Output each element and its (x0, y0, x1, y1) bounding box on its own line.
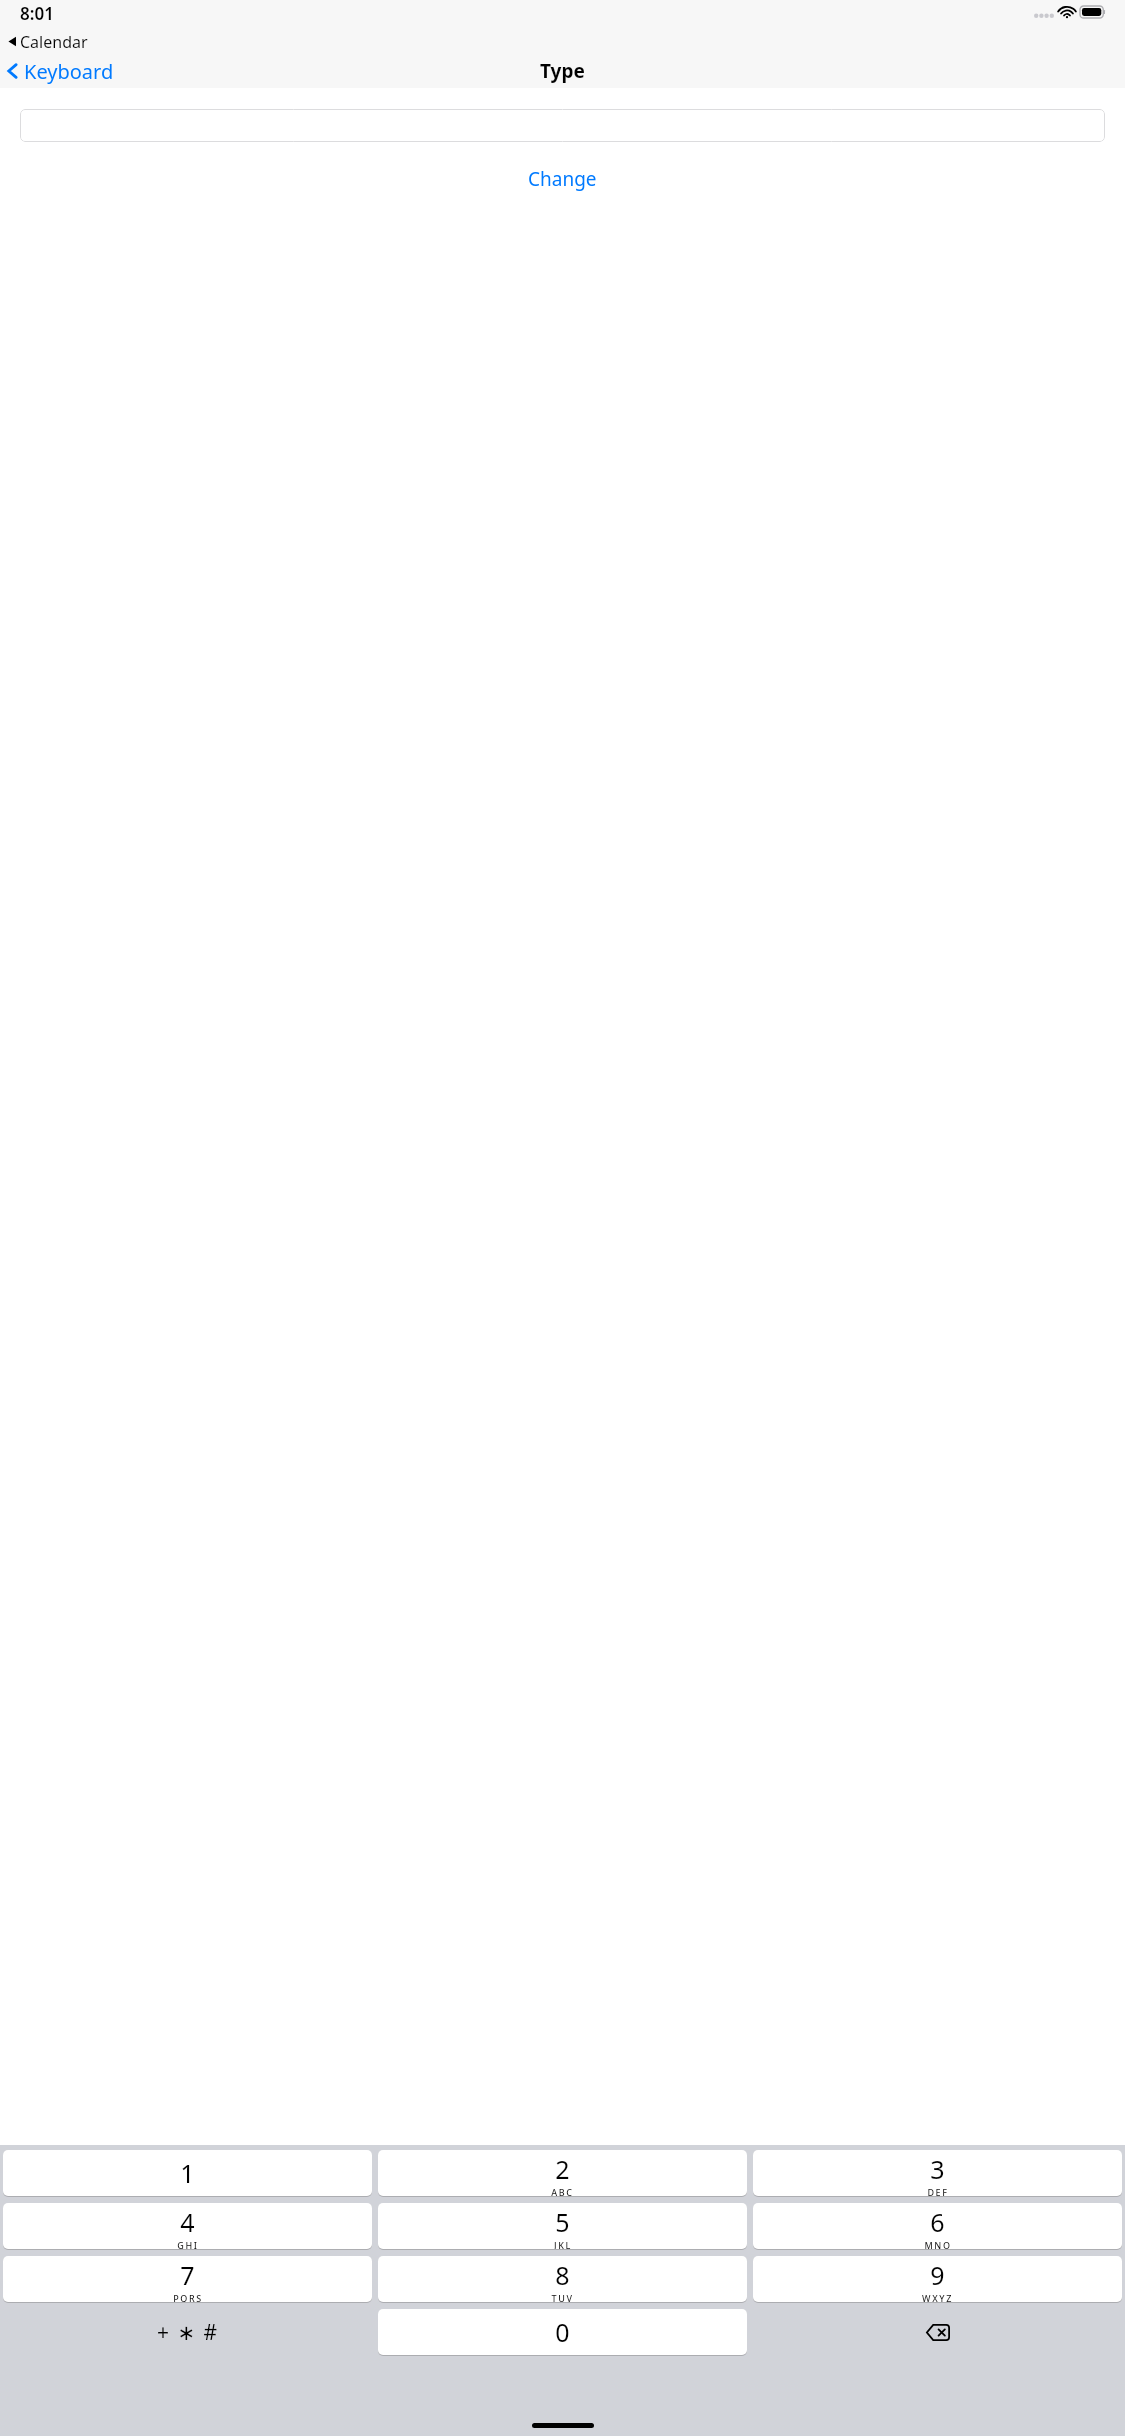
button[interactable]: 2 (378, 2150, 747, 2196)
button[interactable]: 7 (3, 2256, 372, 2302)
staticText: 0 (555, 2315, 570, 2349)
staticText: + ∗ # (157, 2318, 219, 2347)
staticText: GHI (177, 2239, 199, 2249)
button[interactable] (20, 109, 1105, 142)
staticText: Keyboard (24, 58, 114, 85)
button[interactable]: 9 (753, 2256, 1122, 2302)
staticText: PQRS (173, 2292, 203, 2302)
staticText: DEF (927, 2186, 949, 2196)
staticText: JKL (554, 2239, 572, 2249)
staticText: 8 (555, 2258, 570, 2292)
staticText: 5 (555, 2205, 570, 2239)
button[interactable]: Change (0, 166, 1125, 192)
staticText: TUV (551, 2292, 574, 2302)
button[interactable]: 1 (3, 2150, 372, 2196)
staticText: 9 (930, 2258, 945, 2292)
staticText: Change (528, 166, 597, 192)
button[interactable]: Calendar (7, 29, 1125, 54)
button[interactable]: Keyboard (4, 54, 114, 88)
staticText: 1 (180, 2156, 195, 2190)
button[interactable]: 8 (378, 2256, 747, 2302)
staticText: 3 (930, 2152, 945, 2186)
staticText: 6 (930, 2205, 945, 2239)
staticText: 8:01 (20, 2, 54, 25)
button[interactable]: 6 (753, 2203, 1122, 2249)
button[interactable]: Delete (753, 2309, 1122, 2355)
staticText: Type (540, 58, 585, 84)
button[interactable]: + ∗ # (3, 2309, 372, 2355)
staticText: Calendar (20, 31, 88, 53)
button[interactable]: 4 (3, 2203, 372, 2249)
staticText: ABC (551, 2186, 574, 2196)
button[interactable]: 5 (378, 2203, 747, 2249)
button[interactable]: 0 (378, 2309, 747, 2355)
button[interactable]: 3 (753, 2150, 1122, 2196)
staticText: 4 (180, 2205, 195, 2239)
staticText: MNO (924, 2239, 952, 2249)
staticText: 7 (180, 2258, 195, 2292)
staticText: WXYZ (922, 2292, 953, 2302)
staticText: 2 (555, 2152, 570, 2186)
